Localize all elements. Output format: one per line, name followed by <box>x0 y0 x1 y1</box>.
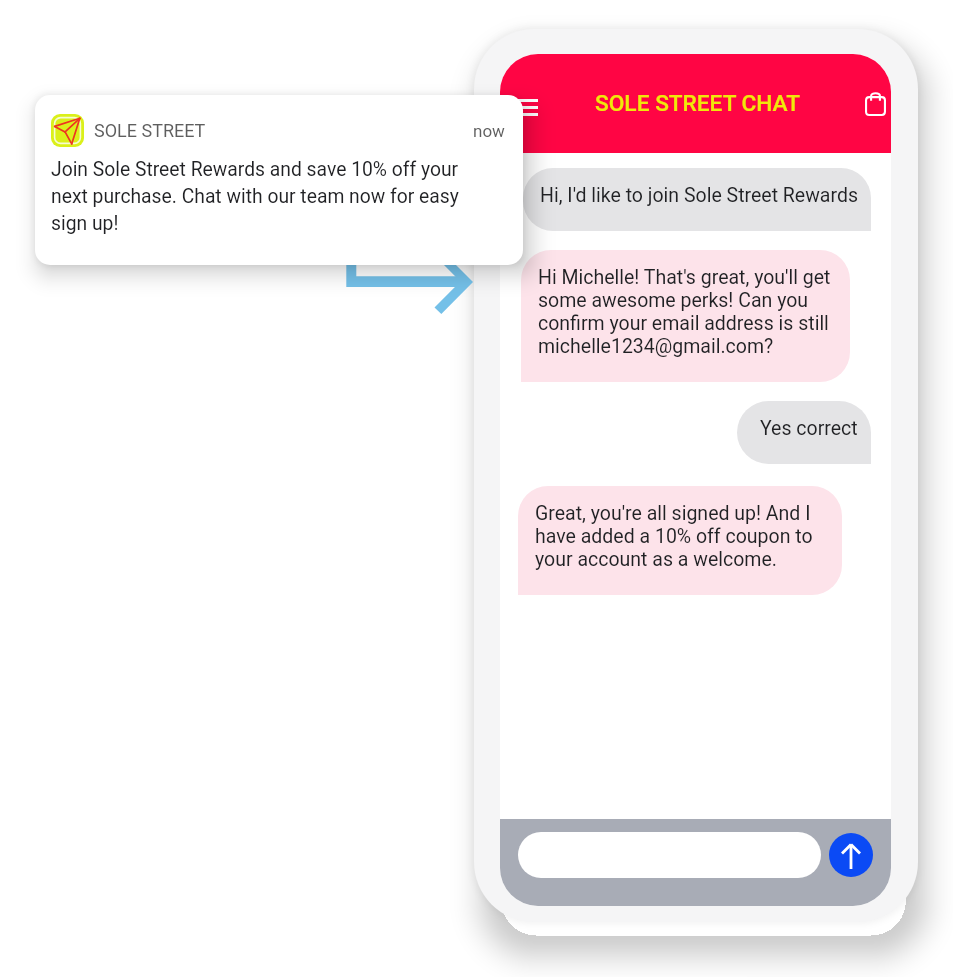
button[interactable]: Hi, I'd like to join Sole Street Rewards <box>523 168 871 231</box>
staticText: Hi, I'd like to join Sole Street Rewards <box>540 184 858 207</box>
button[interactable]: Menu <box>511 91 543 123</box>
button[interactable]: SOLE STREET <box>35 95 523 265</box>
button[interactable]: Great, you're all signed up! And I have … <box>518 486 842 595</box>
button[interactable]: Yes correct <box>737 401 871 464</box>
button[interactable]: Message input <box>518 832 821 878</box>
button[interactable]: Hi Michelle! That's great, you'll get so… <box>521 250 850 382</box>
staticText: Yes correct <box>760 417 858 440</box>
button[interactable]: Shopping bag <box>857 85 891 121</box>
staticText: Hi Michelle! That's great, you'll get so… <box>538 266 831 358</box>
staticText: Great, you're all signed up! And I have … <box>535 502 813 571</box>
staticText: Join Sole Street Rewards and save 10% of… <box>51 158 459 235</box>
staticText: SOLE STREET <box>94 120 206 141</box>
button[interactable]: Send <box>829 833 873 877</box>
staticText: now <box>473 121 505 141</box>
staticText: SOLE STREET CHAT <box>595 90 801 117</box>
